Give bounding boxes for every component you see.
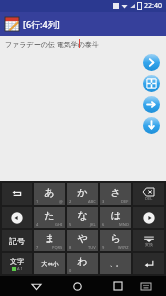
staticText: な [77,209,88,222]
staticText: ABC [88,199,96,204]
staticText: や [77,232,88,245]
button[interactable]: Move right [143,96,160,113]
staticText: 記号 [9,236,25,246]
staticText: ま [44,232,55,245]
button[interactable]: か [67,183,98,205]
staticText: 4 [36,222,39,227]
other: Cursor left [11,212,23,224]
staticText: 5 [69,222,72,227]
staticText: 3 [102,199,105,204]
staticText: た [44,209,55,222]
button[interactable]: た [34,207,65,228]
button[interactable]: Convert [133,230,164,251]
staticText: A 1 [17,266,23,271]
staticText: 9 [102,245,105,250]
staticText: MNO [119,222,129,227]
staticText: 変換 [145,242,153,247]
button[interactable]: Back [26,276,46,296]
button[interactable]: Move down [143,117,160,134]
button[interactable]: Home [67,276,87,296]
button[interactable]: あ [34,183,65,205]
button[interactable]: Undo [2,183,32,205]
button[interactable]: わ [67,253,98,274]
staticText: さ [110,186,121,199]
button[interactable]: Cursor left [2,207,32,228]
button[interactable]: な [67,207,98,228]
staticText: JKL [90,222,96,227]
staticText: @ [59,199,63,204]
button[interactable]: 、。 [100,253,131,274]
staticText: DEL [145,196,153,201]
staticText: 0 [69,268,72,273]
staticText: は [110,209,121,222]
staticText: わ [77,255,88,268]
button[interactable]: は [100,207,131,228]
staticText: [6行:4列] [23,18,60,30]
button[interactable]: Next cell [143,54,160,71]
staticText: DEF [121,199,129,204]
button[interactable]: ら [100,230,131,251]
button[interactable]: さ [100,183,131,205]
button[interactable]: Recents [108,276,128,296]
button[interactable]: Cursor right [133,207,164,228]
staticText: ら [110,232,121,245]
staticText: WXYZ [118,245,129,250]
staticText: 1 [36,199,39,204]
button[interactable]: Enter [133,253,164,274]
other: Cursor right [143,212,155,224]
staticText: TUV [88,245,96,250]
other: Enter [143,258,155,270]
button[interactable]: 大⇔小 [34,253,65,274]
button[interactable]: 文字 [2,253,32,274]
button[interactable]: ま [34,230,65,251]
other: Undo [11,188,23,200]
button[interactable]: 記号 [2,230,32,251]
staticText: 文字 [10,257,24,266]
staticText: 7 [36,245,39,250]
staticText: 8 [69,245,72,250]
button[interactable]: や [67,230,98,251]
staticText: 2 [69,199,72,204]
staticText: 22:40 [144,1,162,11]
staticText: GHI [55,222,63,227]
staticText: あ [44,186,55,199]
button[interactable]: Fit [143,75,160,92]
other: Convert [143,235,155,247]
other: Delete [143,188,154,201]
staticText: PQRS [52,245,63,250]
staticText: ファラデーの伝 電気学の泰斗 [5,40,99,50]
staticText: 大⇔小 [41,260,59,268]
button[interactable]: Delete [133,183,164,205]
button[interactable]: Switch keyboard [136,276,156,296]
staticText: 、。 [110,260,122,268]
staticText: 6 [102,222,105,227]
staticText: か [77,186,88,199]
